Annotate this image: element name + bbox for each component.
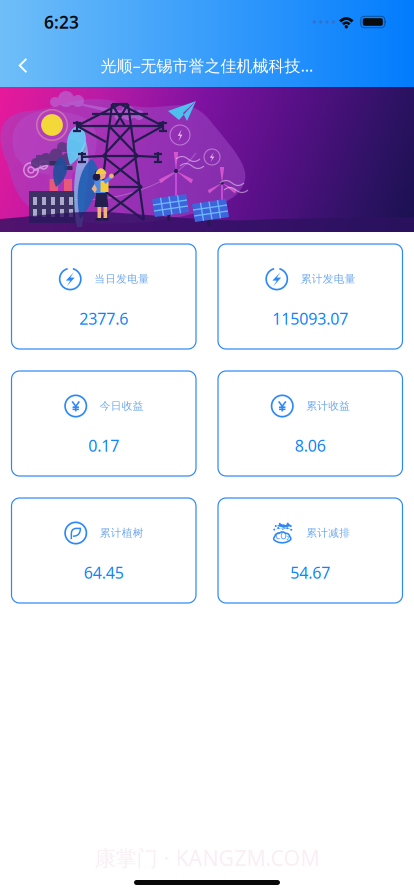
staticText: 光顺–无锡市誉之佳机械科技… (100, 55, 313, 76)
button[interactable]: 当日发电量 (11, 244, 196, 349)
staticText: 115093.07 (272, 308, 348, 329)
staticText: 当日发电量 (94, 272, 149, 285)
staticText: 累计收益 (306, 399, 350, 412)
staticText: 0.17 (88, 435, 119, 456)
staticText: 8.06 (295, 435, 326, 456)
button[interactable]: 累计发电量 (218, 244, 402, 349)
staticText: CO₂ (275, 531, 289, 541)
button[interactable]: Back (0, 44, 46, 87)
staticText: 今日收益 (100, 399, 144, 412)
staticText: 累计减排 (306, 526, 350, 539)
button[interactable]: 累计收益 (218, 371, 402, 476)
staticText: 累计植树 (100, 526, 144, 539)
button[interactable]: 累计植树 (11, 498, 196, 603)
staticText: 6:23 (44, 10, 79, 33)
staticText: 累计发电量 (301, 272, 356, 285)
button[interactable]: CO₂ (218, 498, 402, 603)
staticText: 54.67 (290, 562, 330, 583)
staticText: 2377.6 (79, 308, 128, 329)
staticText: 康掌门 · KANGZM.COM (94, 844, 319, 872)
button[interactable]: 今日收益 (11, 371, 196, 476)
staticText: 64.45 (84, 562, 124, 583)
